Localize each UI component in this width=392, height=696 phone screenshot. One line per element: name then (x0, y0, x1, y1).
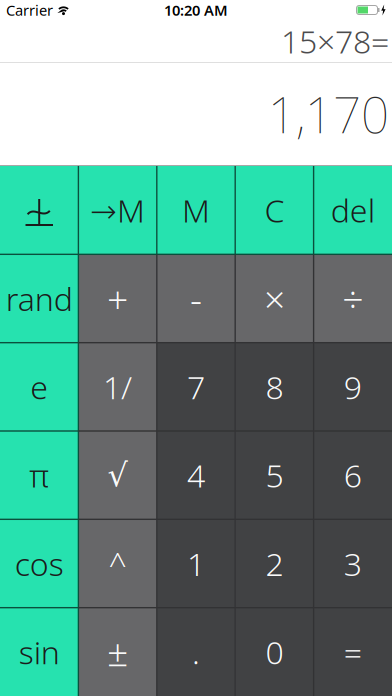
button[interactable]: 9 (314, 343, 392, 431)
button[interactable]: 4 (157, 431, 235, 519)
staticText: del (331, 189, 375, 231)
staticText: C (264, 189, 284, 231)
button[interactable]: →M (78, 166, 157, 254)
staticText: M (182, 189, 210, 231)
staticText: sin (19, 631, 60, 673)
staticText: 0 (265, 631, 283, 673)
button[interactable]: rand (0, 254, 78, 343)
staticText: 8 (265, 366, 283, 408)
staticText: = (344, 631, 362, 673)
button[interactable]: ± (78, 608, 157, 696)
staticText: ÷ (342, 274, 363, 323)
button[interactable]: M (157, 166, 235, 254)
staticText: 3 (344, 542, 362, 585)
staticText: 15×78= (281, 20, 389, 62)
button[interactable]: e (0, 343, 78, 431)
staticText: rand (6, 277, 73, 320)
button[interactable]: 3 (314, 519, 392, 608)
staticText: 1,170 (268, 81, 389, 147)
button[interactable]: 1 (157, 519, 235, 608)
button[interactable]: 5 (235, 431, 314, 519)
button[interactable]: Scientific notation (0, 166, 78, 254)
staticText: π (29, 454, 49, 496)
staticText: 6 (344, 454, 362, 496)
staticText: ± (107, 627, 128, 677)
button[interactable]: 1/ (78, 343, 157, 431)
staticText: . (192, 631, 200, 673)
button[interactable]: ÷ (314, 254, 392, 343)
button[interactable]: 0 (235, 608, 314, 696)
button[interactable]: cos (0, 519, 78, 608)
button[interactable]: ^ (78, 519, 157, 608)
staticText: 9 (344, 366, 362, 408)
button[interactable]: × (235, 254, 314, 343)
button[interactable]: - (157, 254, 235, 343)
staticText: 2 (265, 542, 283, 585)
button[interactable]: = (314, 608, 392, 696)
staticText: 4 (187, 454, 205, 496)
staticText: + (107, 274, 128, 323)
staticText: √ (108, 457, 128, 493)
staticText: 1/ (103, 366, 132, 408)
button[interactable]: . (157, 608, 235, 696)
staticText: 1 (187, 542, 205, 585)
staticText: ^ (109, 542, 127, 585)
button[interactable]: √ (78, 431, 157, 519)
button[interactable]: + (78, 254, 157, 343)
button[interactable]: del (314, 166, 392, 254)
button[interactable]: 8 (235, 343, 314, 431)
button[interactable]: 7 (157, 343, 235, 431)
button[interactable]: 2 (235, 519, 314, 608)
staticText: cos (15, 542, 64, 585)
staticText: 5 (265, 454, 283, 496)
button[interactable]: C (235, 166, 314, 254)
button[interactable]: 6 (314, 431, 392, 519)
staticText: e (30, 366, 48, 408)
staticText: →M (90, 189, 145, 231)
staticText: × (264, 274, 285, 323)
staticText: Carrier (6, 0, 53, 20)
button[interactable]: sin (0, 608, 78, 696)
button[interactable]: π (0, 431, 78, 519)
staticText: 10:20 AM (164, 0, 228, 20)
staticText: - (190, 274, 202, 323)
staticText: 7 (187, 366, 205, 408)
